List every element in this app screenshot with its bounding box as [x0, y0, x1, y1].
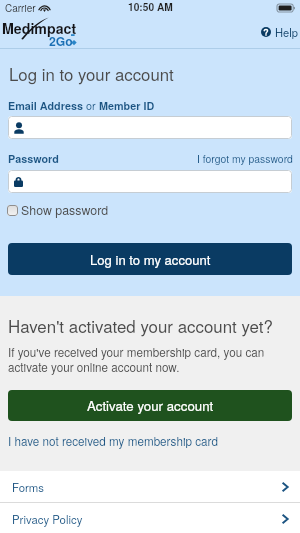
staticText: Privacy Policy	[12, 511, 83, 527]
staticText: If you've received your membership card,…	[8, 344, 265, 375]
staticText: Email Address	[8, 98, 83, 113]
staticText: Member ID	[99, 98, 155, 113]
button[interactable]: Privacy Policy	[0, 503, 300, 533]
button[interactable]: Forms	[0, 471, 300, 502]
button[interactable]: Show password	[7, 201, 109, 219]
staticText: Log in to my account	[90, 250, 211, 269]
button[interactable]: I have not received my membership card	[8, 433, 218, 450]
staticText: 2Go	[49, 32, 73, 49]
button[interactable]: Log in to my account	[8, 243, 292, 275]
staticText: 10:50 AM	[128, 0, 173, 15]
other: Email or member ID	[14, 122, 24, 134]
button[interactable]: Password	[8, 170, 292, 193]
staticText: Log in to your account	[9, 62, 174, 86]
staticText: Carrier	[5, 1, 36, 15]
button[interactable]: Help	[261, 24, 299, 40]
other: Wi-Fi	[40, 5, 49, 12]
other: Battery	[277, 4, 295, 12]
staticText: Activate your account	[87, 396, 214, 415]
staticText: Medimpact	[2, 18, 77, 38]
staticText: Show password	[21, 201, 109, 219]
staticText: Haven't activated your account yet?	[8, 314, 273, 338]
other: Help	[261, 27, 271, 37]
button[interactable]: Email or member ID	[8, 116, 292, 139]
staticText: or	[83, 98, 99, 113]
staticText: Help	[275, 24, 299, 40]
other: Password	[14, 176, 23, 187]
staticText: Forms	[12, 479, 45, 495]
other: Show password	[7, 205, 18, 216]
button[interactable]: I forgot my password	[197, 151, 293, 166]
button[interactable]: Activate your account	[8, 390, 292, 421]
staticText: Password	[8, 151, 59, 166]
